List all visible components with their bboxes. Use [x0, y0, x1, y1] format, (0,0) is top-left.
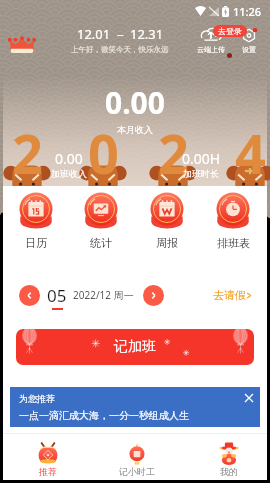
staticText: 上午好，微笑今天，快乐永远 [71, 45, 169, 54]
button[interactable]: 推荐 [18, 434, 78, 480]
staticText: 0.00 [55, 149, 83, 168]
staticText: 2 [158, 116, 189, 188]
button[interactable]: 为您推荐 [10, 387, 260, 427]
button[interactable]: 记小时工 [107, 434, 167, 480]
button[interactable]: 去请假 [213, 288, 252, 302]
staticText: 0.00 [105, 82, 165, 123]
staticText: 设置 [242, 45, 256, 54]
staticText: 本月收入 [117, 124, 153, 135]
staticText: 0.00H [182, 149, 221, 168]
staticText: 记小时工 [119, 466, 155, 477]
staticText: 推荐 [39, 466, 57, 477]
staticText: 2022/12 周一 [73, 288, 134, 302]
button[interactable]: VIP [9, 35, 35, 53]
button[interactable]: 统计 [68, 192, 134, 250]
staticText: 云端上传 [197, 45, 225, 54]
staticText: 为您推荐 [19, 393, 55, 404]
staticText: 周报 [156, 236, 178, 250]
staticText: 11:26 [233, 4, 262, 19]
button[interactable]: 周报 [134, 192, 200, 250]
staticText: 去请假 [213, 288, 246, 302]
button[interactable]: 去登录 [213, 25, 247, 37]
button[interactable]: Previous day [19, 285, 40, 306]
button[interactable]: Close [240, 389, 258, 407]
staticText: 0 [88, 116, 119, 188]
staticText: 加班时长 [183, 168, 219, 179]
button[interactable]: 设置 [234, 28, 264, 54]
button[interactable]: 记加班 [16, 329, 254, 365]
staticText: 记加班 [114, 338, 156, 356]
staticText: 我的 [220, 466, 238, 477]
staticText: 一点一滴汇成大海，一分一秒组成人生 [19, 409, 189, 422]
button[interactable]: 我的 [199, 434, 259, 480]
staticText: 05 [47, 284, 67, 307]
button[interactable]: 排班表 [200, 192, 266, 250]
button[interactable]: Next day [143, 285, 164, 306]
button[interactable]: 日历 [3, 192, 68, 250]
staticText: 12.01 － 12.31 [77, 25, 164, 43]
staticText: 4 [235, 116, 266, 188]
staticText: 统计 [90, 236, 112, 250]
staticText: 加班收入 [51, 168, 87, 179]
staticText: 去登录 [218, 26, 242, 36]
staticText: 日历 [25, 236, 47, 250]
staticText: 排班表 [217, 236, 250, 250]
staticText: 2 [12, 116, 43, 188]
button[interactable]: 云端上传 [194, 28, 228, 54]
